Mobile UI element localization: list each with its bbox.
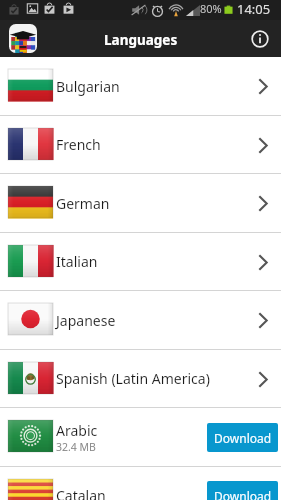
- button[interactable]: Download: [207, 423, 278, 452]
- staticText: 80%: [200, 1, 222, 16]
- button[interactable]: App icon: [9, 24, 37, 53]
- button[interactable]: German: [0, 174, 281, 232]
- staticText: Catalan: [56, 486, 106, 500]
- button[interactable]: Italian: [0, 233, 281, 290]
- button[interactable]: Arabic: [0, 408, 281, 466]
- button[interactable]: Spanish (Latin America): [0, 350, 281, 407]
- staticText: French: [56, 135, 101, 154]
- button[interactable]: Japanese: [0, 291, 281, 349]
- button[interactable]: Catalan: [0, 467, 281, 500]
- button[interactable]: Download: [207, 481, 278, 500]
- button[interactable]: Info: [248, 27, 272, 51]
- button[interactable]: Bulgarian: [0, 57, 281, 115]
- staticText: 14:05: [237, 0, 271, 18]
- staticText: Italian: [56, 252, 98, 271]
- staticText: German: [56, 194, 110, 213]
- staticText: Spanish (Latin America): [56, 369, 210, 388]
- staticText: Download: [214, 430, 272, 446]
- staticText: Arabic: [56, 421, 98, 440]
- button[interactable]: French: [0, 116, 281, 173]
- staticText: Download: [214, 488, 272, 500]
- staticText: Languages: [104, 31, 178, 49]
- staticText: Bulgarian: [56, 77, 120, 96]
- staticText: Japanese: [56, 311, 116, 330]
- staticText: 32.4 MB: [56, 440, 96, 454]
